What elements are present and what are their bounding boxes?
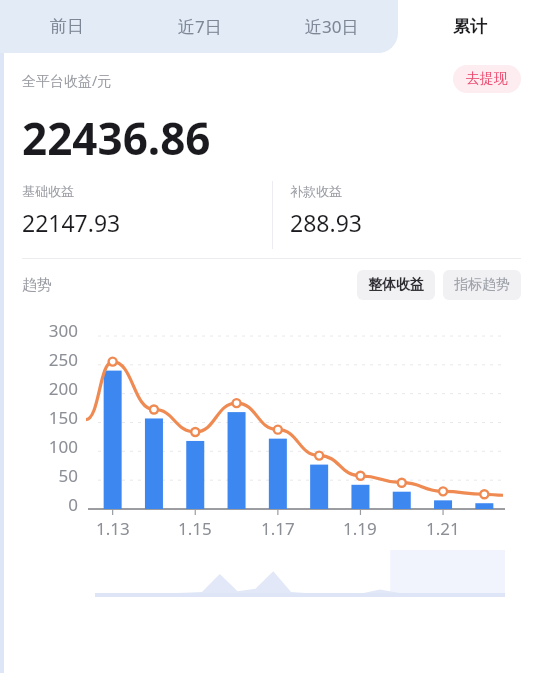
staticText: 150 (48, 406, 78, 429)
staticText: 50 (58, 464, 78, 487)
staticText: 近30日 (305, 15, 359, 38)
button[interactable]: 整体收益 (357, 270, 435, 300)
staticText: 22147.93 (22, 207, 121, 238)
staticText: 300 (48, 319, 78, 342)
staticText: 100 (48, 435, 78, 458)
button[interactable]: Chart range selector (0, 546, 541, 606)
staticText: 200 (48, 377, 78, 400)
staticText: 1.13 (96, 517, 130, 540)
staticText: 250 (48, 348, 78, 371)
staticText: 近7日 (178, 15, 222, 38)
staticText: 1.17 (261, 517, 295, 540)
button[interactable]: 近30日 (266, 0, 398, 53)
button[interactable]: 累计 (398, 0, 541, 53)
staticText: 基础收益 (22, 183, 74, 199)
staticText: 1.19 (343, 517, 377, 540)
staticText: 0 (68, 493, 78, 516)
staticText: 趋势 (22, 276, 52, 295)
button[interactable]: 前日 (0, 0, 133, 53)
button[interactable]: 去提现 (453, 65, 521, 93)
staticText: 288.93 (290, 207, 362, 238)
staticText: 补款收益 (290, 183, 342, 199)
staticText: 1.15 (178, 517, 212, 540)
staticText: 去提现 (466, 70, 508, 88)
staticText: 全平台收益/元 (22, 71, 112, 90)
staticText: 累计 (453, 16, 487, 37)
staticText: 22436.86 (22, 108, 211, 168)
staticText: 指标趋势 (454, 276, 510, 294)
button[interactable]: 指标趋势 (443, 270, 521, 300)
staticText: 前日 (50, 16, 84, 37)
staticText: 1.21 (426, 517, 460, 540)
button[interactable]: 近7日 (133, 0, 266, 53)
staticText: 整体收益 (368, 276, 424, 294)
